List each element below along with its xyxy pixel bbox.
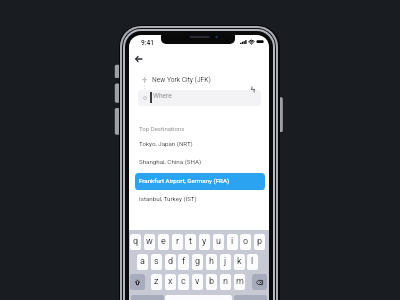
button[interactable]: w <box>144 234 155 250</box>
button[interactable]: Swap origin and destination <box>248 84 258 94</box>
staticText: a <box>140 256 145 267</box>
button[interactable]: Shanghai, China (SHA) <box>135 154 265 171</box>
staticText: f <box>182 256 186 267</box>
button[interactable]: Shift <box>130 274 145 290</box>
staticText: n <box>223 276 228 287</box>
button[interactable]: Frankfurt Airport, Germany (FRA) <box>135 173 265 190</box>
button[interactable]: v <box>192 274 203 290</box>
staticText: i <box>231 236 234 247</box>
button[interactable]: p <box>254 234 265 250</box>
staticText: Frankfurt Airport, Germany (FRA) <box>139 177 230 184</box>
button[interactable]: r <box>172 234 183 250</box>
staticText: Where <box>153 92 172 100</box>
button[interactable]: i <box>227 234 238 250</box>
button[interactable]: d <box>165 254 176 270</box>
staticText: d <box>168 256 174 267</box>
staticText: b <box>209 276 215 287</box>
button[interactable]: y <box>199 234 210 250</box>
staticText: y <box>202 236 207 247</box>
staticText: Top Destinations <box>139 125 185 132</box>
staticText: Tokyo, Japan (NRT) <box>139 140 193 147</box>
staticText: j <box>224 256 227 267</box>
button[interactable]: c <box>178 274 189 290</box>
staticText: c <box>181 276 186 287</box>
staticText: z <box>154 276 159 287</box>
button[interactable]: l <box>247 254 258 270</box>
staticText: Shanghai, China (SHA) <box>139 158 202 165</box>
button[interactable]: a <box>137 254 148 270</box>
button[interactable]: m <box>234 274 245 290</box>
button[interactable]: n <box>220 274 231 290</box>
button[interactable]: s <box>151 254 162 270</box>
staticText: w <box>146 236 153 247</box>
button[interactable]: Backspace <box>252 274 267 290</box>
button[interactable]: u <box>213 234 224 250</box>
staticText: x <box>168 276 173 287</box>
button[interactable]: k <box>234 254 245 270</box>
button[interactable]: e <box>158 234 169 250</box>
staticText: g <box>195 256 201 267</box>
button[interactable]: Back <box>131 52 146 67</box>
button[interactable]: x <box>165 274 176 290</box>
button[interactable]: z <box>151 274 162 290</box>
button[interactable]: Space <box>165 295 232 300</box>
button[interactable]: g <box>192 254 203 270</box>
staticText: 9:41 <box>141 39 154 47</box>
button[interactable]: Where <box>138 90 261 106</box>
staticText: s <box>154 256 159 267</box>
button[interactable]: Tokyo, Japan (NRT) <box>135 136 265 153</box>
staticText: h <box>209 256 214 267</box>
button[interactable]: Istanbul, Turkey (IST) <box>135 191 265 208</box>
staticText: q <box>133 236 139 247</box>
staticText: m <box>236 276 244 287</box>
staticText: r <box>176 236 180 247</box>
staticText: p <box>257 236 263 247</box>
staticText: k <box>237 256 242 267</box>
staticText: u <box>216 236 221 247</box>
staticText: o <box>243 236 249 247</box>
staticText: New York City (JFK) <box>152 76 211 84</box>
staticText: t <box>189 236 192 247</box>
button[interactable]: q <box>130 234 141 250</box>
button[interactable]: b <box>206 274 217 290</box>
staticText: l <box>251 256 254 267</box>
button[interactable]: j <box>220 254 231 270</box>
button[interactable]: t <box>185 234 196 250</box>
staticText: e <box>161 236 166 247</box>
button[interactable]: f <box>178 254 189 270</box>
staticText: Istanbul, Turkey (IST) <box>139 195 197 202</box>
button[interactable]: h <box>206 254 217 270</box>
staticText: v <box>195 276 200 287</box>
button[interactable]: o <box>240 234 251 250</box>
